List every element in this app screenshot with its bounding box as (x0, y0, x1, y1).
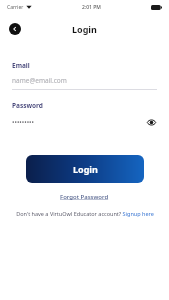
staticText: name@email.com (12, 76, 67, 85)
button[interactable]: name@email.com (12, 76, 157, 90)
staticText: 2:01 PM (82, 4, 101, 11)
button[interactable]: Forgot Password (58, 192, 111, 202)
button[interactable]: Back (9, 23, 21, 35)
staticText: Password (12, 101, 43, 110)
staticText: ••••••••• (12, 118, 145, 127)
button[interactable]: Don't have a VirtuOwl Educator account? … (16, 210, 154, 217)
button[interactable]: ••••••••• (12, 116, 157, 128)
staticText: Email (12, 61, 30, 70)
button[interactable]: Show password (145, 116, 157, 128)
staticText: Carrier (7, 4, 24, 11)
staticText: Don't have a VirtuOwl Educator account? … (16, 210, 154, 217)
staticText: Login (73, 163, 98, 175)
staticText: Login (72, 23, 97, 35)
staticText: Forgot Password (60, 193, 109, 201)
button[interactable]: Login (26, 155, 144, 183)
